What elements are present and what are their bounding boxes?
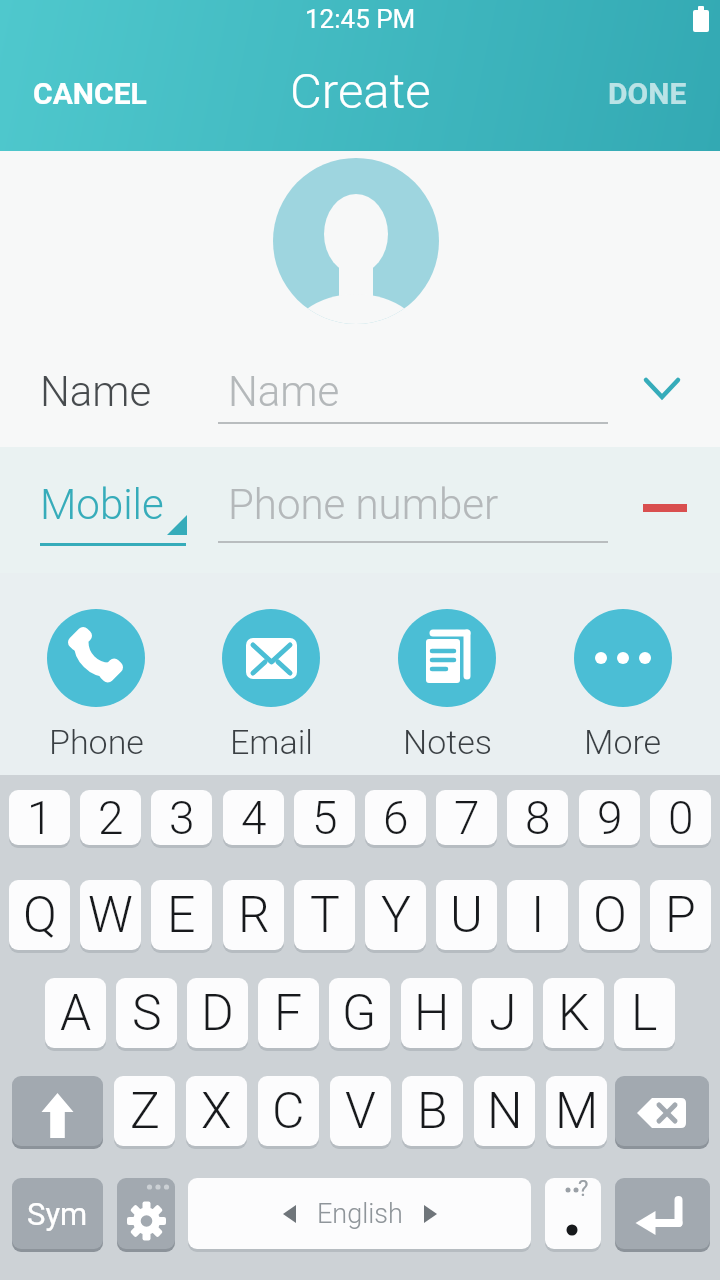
button[interactable]: G (329, 978, 390, 1048)
button[interactable]: P (650, 880, 711, 950)
button[interactable]: D (187, 978, 248, 1048)
button[interactable] (633, 488, 697, 528)
button[interactable] (615, 1178, 710, 1249)
button[interactable]: M (546, 1076, 607, 1146)
staticText: Notes (403, 722, 492, 762)
button[interactable]: 8 (507, 790, 568, 845)
button[interactable]: 0 (650, 790, 711, 845)
button[interactable] (273, 158, 439, 324)
button[interactable]: Sym (12, 1178, 103, 1249)
button[interactable]: 1 (9, 790, 70, 845)
staticText: ? (578, 1178, 589, 1202)
staticText: 1 (27, 791, 53, 845)
staticText: Q (23, 886, 57, 945)
staticText: C (272, 1082, 305, 1141)
staticText: E (167, 886, 196, 945)
button[interactable] (47, 609, 145, 707)
staticText: Phone number (228, 480, 499, 529)
staticText: P (665, 886, 696, 945)
button[interactable]: 4 (223, 790, 284, 845)
staticText: J (489, 984, 517, 1043)
button[interactable]: I (507, 880, 568, 950)
staticText: R (238, 886, 270, 945)
button[interactable]: X (186, 1076, 247, 1146)
staticText: B (417, 1082, 448, 1141)
button[interactable]: Z (114, 1076, 175, 1146)
staticText: V (345, 1082, 376, 1141)
button[interactable]: 3 (151, 790, 212, 845)
button[interactable] (615, 1076, 709, 1146)
button[interactable]: 7 (436, 790, 497, 845)
button[interactable]: CANCEL (33, 76, 147, 111)
button[interactable]: H (401, 978, 462, 1048)
staticText: I (531, 886, 545, 945)
staticText: Name (228, 367, 340, 416)
button[interactable]: R (223, 880, 284, 950)
button[interactable] (630, 364, 694, 416)
staticText: 3 (169, 791, 195, 845)
button[interactable]: U (436, 880, 497, 950)
button[interactable]: F (258, 978, 319, 1048)
staticText: G (342, 984, 377, 1043)
button[interactable]: ? (545, 1178, 601, 1249)
staticText: W (88, 886, 133, 945)
button[interactable]: DONE (608, 76, 687, 111)
staticText: X (201, 1082, 232, 1141)
button[interactable] (398, 609, 496, 707)
button[interactable]: B (402, 1076, 463, 1146)
button[interactable] (218, 476, 608, 543)
staticText: 6 (383, 791, 409, 845)
button[interactable]: W (80, 880, 141, 950)
button[interactable] (218, 358, 608, 424)
button[interactable]: E (151, 880, 212, 950)
button[interactable] (33, 478, 193, 548)
staticText: U (450, 886, 483, 945)
staticText: Phone (49, 722, 144, 762)
staticText: 12:45 PM (305, 4, 416, 34)
button[interactable]: A (45, 978, 106, 1048)
button[interactable]: T (294, 880, 355, 950)
staticText: English (317, 1198, 403, 1230)
staticText: Name (40, 367, 152, 416)
staticText: H (414, 984, 450, 1043)
button[interactable]: K (543, 978, 604, 1048)
staticText: 0 (668, 791, 694, 845)
staticText: 2 (98, 791, 124, 845)
button[interactable]: V (330, 1076, 391, 1146)
button[interactable]: 6 (365, 790, 426, 845)
staticText: CANCEL (33, 76, 147, 111)
staticText: T (310, 886, 340, 945)
button[interactable] (12, 1076, 103, 1146)
button[interactable]: 5 (294, 790, 355, 845)
staticText: 9 (597, 791, 623, 845)
staticText: O (593, 886, 627, 945)
button[interactable]: S (116, 978, 177, 1048)
button[interactable]: O (579, 880, 640, 950)
staticText: 7 (454, 791, 480, 845)
button[interactable] (117, 1178, 175, 1249)
staticText: M (555, 1082, 599, 1141)
button[interactable]: 9 (579, 790, 640, 845)
staticText: 4 (241, 791, 267, 845)
button[interactable]: 2 (80, 790, 141, 845)
staticText: Create (290, 63, 431, 120)
button[interactable]: Q (9, 880, 70, 950)
staticText: D (201, 984, 234, 1043)
button[interactable]: English (188, 1178, 531, 1249)
button[interactable]: N (474, 1076, 535, 1146)
button[interactable]: J (472, 978, 533, 1048)
button[interactable] (574, 609, 672, 707)
staticText: A (60, 984, 92, 1043)
button[interactable] (222, 609, 320, 707)
staticText: Y (381, 886, 411, 945)
staticText: K (558, 984, 590, 1043)
button[interactable]: C (258, 1076, 319, 1146)
staticText: Sym (27, 1196, 88, 1232)
staticText: L (631, 984, 658, 1043)
button[interactable]: L (614, 978, 675, 1048)
staticText: More (584, 722, 662, 762)
staticText: F (274, 984, 303, 1043)
staticText: N (487, 1082, 523, 1141)
button[interactable]: Y (365, 880, 426, 950)
staticText: S (132, 984, 162, 1043)
